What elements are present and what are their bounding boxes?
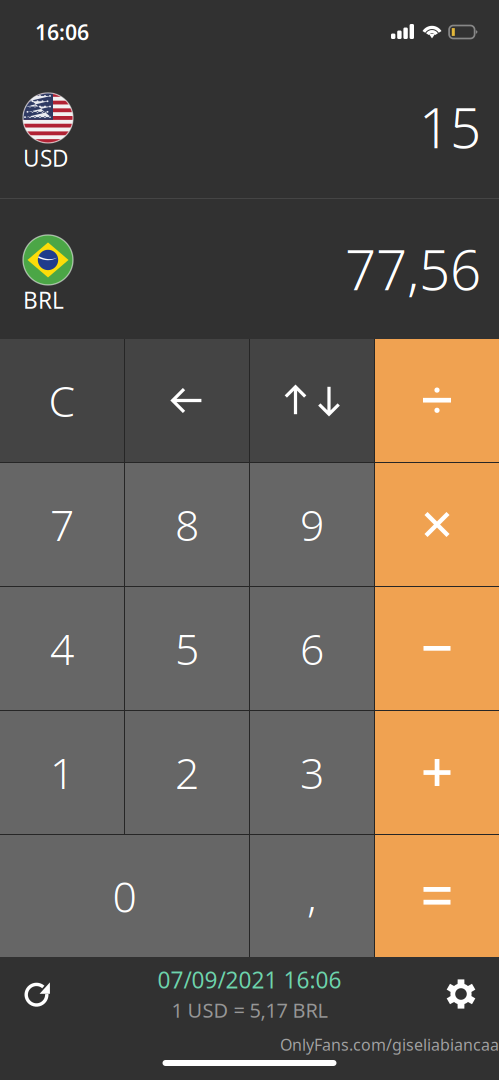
staticText: 9: [300, 496, 324, 553]
staticText: 5: [175, 620, 199, 677]
button[interactable]: BRL: [0, 199, 499, 339]
button[interactable]: 9: [250, 463, 374, 586]
button[interactable]: 4: [0, 587, 124, 710]
staticText: 7: [50, 496, 74, 553]
button[interactable]: 6: [250, 587, 374, 710]
staticText: 4: [50, 620, 74, 677]
button[interactable]: [375, 711, 499, 834]
staticText: 3: [300, 744, 324, 801]
staticText: 8: [175, 496, 199, 553]
staticText: 16:06: [35, 18, 89, 46]
button[interactable]: 5: [125, 587, 249, 710]
button[interactable]: 7: [0, 463, 124, 586]
button[interactable]: [125, 339, 249, 462]
staticText: OnlyFans.com/giseliabiancaa: [280, 1034, 499, 1055]
button[interactable]: 3: [250, 711, 374, 834]
button[interactable]: [375, 463, 499, 586]
staticText: 07/09/2021 16:06: [157, 965, 341, 995]
staticText: 6: [300, 620, 324, 677]
button[interactable]: Settings: [423, 957, 499, 1031]
button[interactable]: [375, 835, 499, 957]
staticText: USD: [23, 143, 69, 173]
button[interactable]: [375, 339, 499, 462]
staticText: C: [48, 372, 75, 429]
button[interactable]: 0: [0, 835, 249, 957]
button[interactable]: C: [0, 339, 124, 462]
staticText: 1: [50, 744, 74, 801]
button[interactable]: Refresh rates: [0, 957, 76, 1031]
staticText: ,: [307, 868, 317, 924]
button[interactable]: [375, 587, 499, 710]
staticText: 77,56: [345, 233, 481, 305]
button[interactable]: 8: [125, 463, 249, 586]
button[interactable]: [250, 339, 374, 462]
staticText: BRL: [23, 285, 64, 315]
staticText: 0: [112, 868, 136, 924]
button[interactable]: ,: [250, 835, 374, 957]
button[interactable]: 2: [125, 711, 249, 834]
button[interactable]: USD: [0, 56, 499, 198]
staticText: 1 USD = 5,17 BRL: [171, 997, 327, 1023]
button[interactable]: 1: [0, 711, 124, 834]
staticText: 2: [175, 744, 199, 801]
staticText: 15: [419, 91, 481, 163]
